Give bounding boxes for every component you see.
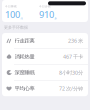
staticText: 行走距离	[14, 37, 34, 44]
staticText: 今日步数	[39, 5, 51, 8]
staticText: 467 千卡	[63, 53, 83, 60]
staticText: 8小时30分	[59, 69, 83, 76]
staticText: 今日睡眠	[5, 5, 17, 8]
button[interactable]: 平均心率	[2, 81, 88, 96]
staticText: 步	[54, 17, 57, 20]
button[interactable]: 消耗热量	[2, 49, 88, 65]
staticText: 深度睡眠	[14, 69, 34, 76]
staticText: 分	[20, 17, 23, 20]
staticText: 910	[39, 8, 54, 21]
staticText: 消耗热量	[14, 53, 34, 60]
staticText: 100	[5, 8, 20, 21]
staticText: 平均心率	[14, 85, 34, 92]
staticText: 72 次/分钟	[59, 85, 83, 92]
staticText: 236 米	[68, 37, 83, 44]
button[interactable]: 行走距离	[2, 33, 88, 49]
button[interactable]: 深度睡眠	[2, 65, 88, 81]
staticText: 更多手环数据	[4, 25, 28, 30]
